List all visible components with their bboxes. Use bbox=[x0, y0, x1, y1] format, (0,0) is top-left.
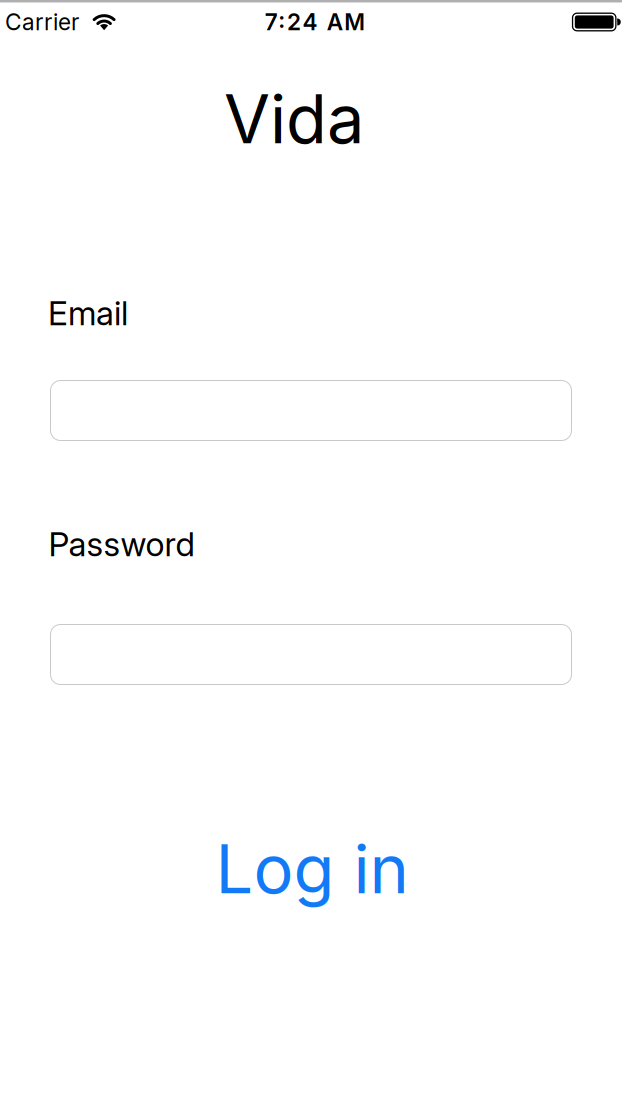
staticText: Vida bbox=[224, 80, 364, 158]
button[interactable]: Log in bbox=[215, 830, 408, 908]
staticText: Password bbox=[48, 524, 194, 564]
staticText: Email bbox=[48, 293, 128, 333]
staticText: Log in bbox=[215, 830, 408, 908]
button[interactable]: Email bbox=[50, 380, 571, 440]
staticText: Carrier bbox=[5, 9, 79, 35]
button[interactable]: Password bbox=[50, 624, 571, 684]
staticText: 7:24 AM bbox=[265, 9, 365, 35]
